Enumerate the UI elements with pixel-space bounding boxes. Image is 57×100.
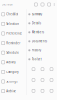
staticText: Settings [6, 80, 17, 83]
button[interactable]: History [27, 46, 57, 55]
button[interactable]: Category [0, 67, 26, 77]
staticText: Overview [2, 3, 13, 6]
button[interactable]: Activity [0, 57, 26, 67]
button[interactable]: Tool [47, 89, 56, 92]
button[interactable]: Tool [47, 68, 56, 71]
button[interactable]: Tool [29, 68, 38, 71]
staticText: Checklist [6, 12, 18, 16]
staticText: Reminder [6, 41, 20, 45]
staticText: Schedule [6, 51, 19, 54]
button[interactable]: Preference [0, 29, 26, 38]
button[interactable]: Archive [0, 86, 26, 96]
button[interactable]: Share [39, 3, 46, 6]
button[interactable]: Toolset [27, 55, 57, 64]
button[interactable]: More [46, 3, 52, 6]
staticText: Category [6, 70, 18, 74]
staticText: Activity [6, 60, 15, 64]
staticText: Details [32, 21, 41, 25]
button[interactable]: Checklist [0, 9, 26, 19]
button[interactable]: Tool [29, 78, 38, 81]
staticText: Selection [6, 22, 19, 26]
button[interactable]: Reminder [0, 38, 26, 48]
button[interactable]: Tool [29, 89, 38, 92]
staticText: Archive [6, 89, 16, 93]
staticText: Summary [32, 12, 42, 16]
button[interactable]: Selection [0, 19, 26, 29]
staticText: Preference [6, 32, 22, 35]
staticText: Toolset [32, 57, 42, 61]
button[interactable]: Tool [38, 68, 47, 71]
button[interactable]: Summary [27, 10, 57, 19]
staticText: History [32, 48, 41, 52]
staticText: Documents [32, 39, 47, 43]
button[interactable]: Settings [0, 77, 26, 86]
button[interactable]: Members [27, 28, 57, 37]
button[interactable]: Grid view [33, 3, 39, 6]
button[interactable]: Tool [47, 78, 56, 81]
button[interactable]: Documents [27, 37, 57, 46]
button[interactable]: Schedule [0, 48, 26, 57]
button[interactable]: Tool [38, 78, 47, 81]
button[interactable]: Details [27, 19, 57, 28]
staticText: Members [32, 30, 44, 34]
button[interactable]: Tool [38, 89, 47, 92]
